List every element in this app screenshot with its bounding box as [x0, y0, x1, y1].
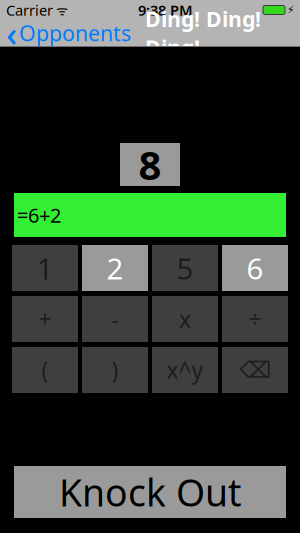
staticText: x^y — [166, 355, 203, 385]
button[interactable]: ( — [12, 347, 78, 393]
staticText: + — [38, 304, 51, 334]
button[interactable]: 6 — [222, 245, 288, 291]
button[interactable]: ‹ — [0, 7, 131, 59]
staticText: ÷ — [248, 304, 261, 334]
button[interactable]: Backspace — [222, 347, 288, 393]
button[interactable]: x^y — [152, 347, 218, 393]
staticText: 9:38 PM — [138, 0, 193, 20]
staticText: 5 — [176, 248, 193, 287]
button[interactable]: + — [12, 296, 78, 342]
staticText: 8 — [138, 138, 161, 191]
staticText: ) — [111, 355, 118, 385]
button[interactable]: x — [152, 296, 218, 342]
staticText: Knock Out — [59, 467, 241, 517]
staticText: Ding! Ding! Ding! — [145, 5, 261, 61]
button[interactable]: ) — [82, 347, 148, 393]
staticText: x — [179, 304, 191, 334]
button[interactable]: Knock Out — [14, 466, 286, 518]
staticText: 2 — [106, 248, 123, 287]
staticText: ‹ — [6, 10, 17, 56]
staticText: - — [111, 304, 118, 334]
staticText: 6 — [246, 248, 263, 287]
button[interactable]: 2 — [82, 245, 148, 291]
staticText: 1 — [36, 248, 53, 287]
staticText: ( — [41, 355, 48, 385]
staticText: ⚡︎ — [287, 4, 294, 16]
button[interactable]: 5 — [152, 245, 218, 291]
button[interactable]: ÷ — [222, 296, 288, 342]
staticText: Carrier — [6, 0, 53, 20]
staticText: =6+2 — [17, 202, 61, 228]
staticText: Opponents — [19, 19, 131, 47]
staticText: ᯤ — [53, 1, 68, 19]
button[interactable]: 1 — [12, 245, 78, 291]
staticText: ⌫ — [239, 357, 271, 383]
